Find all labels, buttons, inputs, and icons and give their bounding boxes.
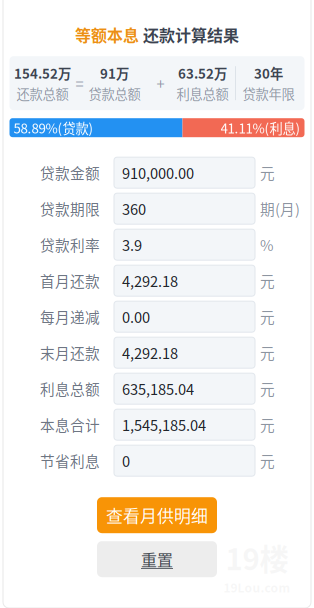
staticText: 63.52万 [178, 63, 227, 83]
staticText: 贷款金额 [40, 162, 100, 183]
staticText: 91万 [100, 63, 129, 83]
staticText: 元 [260, 306, 275, 327]
staticText: 还款计算结果 [139, 23, 239, 46]
staticText: 元 [260, 162, 275, 183]
staticText: 元 [260, 414, 275, 435]
staticText: 贷款总额 [88, 84, 140, 103]
staticText: 利息总额 [40, 378, 100, 399]
staticText: 节省利息 [40, 450, 100, 471]
staticText: 重置 [141, 548, 173, 571]
staticText: 贷款利率 [40, 234, 100, 255]
staticText: 元 [260, 450, 275, 471]
staticText: 360 [122, 198, 146, 219]
staticText: 等额本息 [75, 23, 139, 46]
staticText: 首月还款 [40, 270, 100, 291]
staticText: 0 [122, 450, 130, 471]
button[interactable]: 重置 [97, 541, 217, 577]
button[interactable]: 查看月供明细 [97, 497, 217, 533]
staticText: 元 [260, 378, 275, 399]
staticText: 贷款期限 [40, 198, 100, 219]
staticText: 利息总额 [176, 84, 228, 103]
staticText: 每月递减 [40, 306, 100, 327]
staticText: 41.11%(利息) [220, 118, 300, 137]
staticText: 19楼 [225, 536, 288, 579]
staticText: 58.89%(贷款) [13, 118, 93, 137]
staticText: 末月还款 [40, 342, 100, 363]
staticText: 0.00 [122, 306, 150, 327]
staticText: % [260, 234, 274, 255]
staticText: 期(月) [260, 198, 300, 219]
staticText: 910,000.00 [122, 162, 194, 183]
staticText: 本息合计 [40, 414, 100, 435]
staticText: 元 [260, 342, 275, 363]
staticText: = [75, 72, 83, 94]
staticText: 30年 [254, 63, 283, 83]
staticText: 4,292.18 [122, 342, 178, 363]
staticText: + [156, 72, 164, 94]
staticText: 元 [260, 270, 275, 291]
staticText: 19Lou.com [223, 579, 290, 596]
staticText: 贷款年限 [242, 84, 294, 103]
staticText: 还款总额 [16, 84, 68, 103]
staticText: 1,545,185.04 [122, 414, 206, 435]
staticText: 3.9 [122, 234, 142, 255]
staticText: 4,292.18 [122, 270, 178, 291]
staticText: 635,185.04 [122, 378, 194, 399]
staticText: 154.52万 [14, 63, 71, 83]
staticText: 查看月供明细 [106, 503, 208, 527]
